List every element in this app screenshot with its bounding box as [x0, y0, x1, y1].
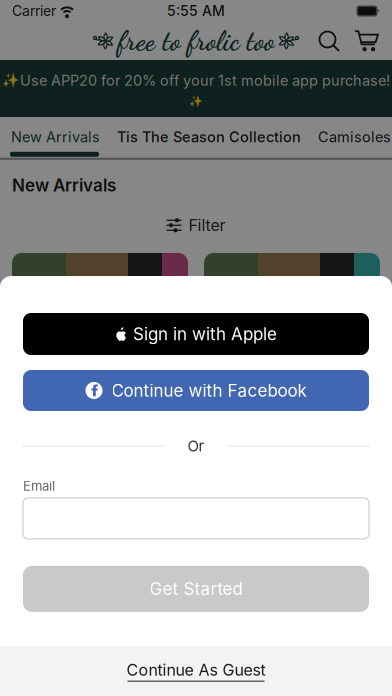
staticText: ✨ [2, 72, 19, 89]
button[interactable]: Sign in with Apple [23, 313, 369, 355]
button[interactable]: Continue As Guest [0, 646, 392, 696]
staticText: Camisoles [318, 128, 391, 146]
staticText: 5:55 AM [167, 2, 225, 19]
staticText: Tis The Season Collection [117, 128, 301, 146]
staticText: Continue with Facebook [111, 380, 306, 401]
staticText: Email [23, 478, 55, 494]
staticText: free to frolic too [117, 25, 274, 57]
button[interactable]: Search [314, 26, 344, 56]
staticText: Carrier [12, 2, 56, 19]
staticText: Or [187, 437, 204, 455]
button[interactable]: Cart [350, 26, 383, 56]
staticText: New Arrivals [11, 128, 100, 146]
staticText: New Arrivals [12, 175, 116, 196]
staticText: Use APP20 for 20% off your 1st mobile ap… [20, 72, 390, 89]
staticText: ✨ [189, 94, 203, 107]
button[interactable]: Continue with Facebook [23, 370, 369, 411]
staticText: Get Started [149, 579, 242, 599]
staticText: Filter [188, 216, 225, 235]
staticText: Continue As Guest [126, 660, 265, 680]
button[interactable]: Get Started [23, 566, 369, 612]
staticText: Sign in with Apple [133, 324, 277, 344]
